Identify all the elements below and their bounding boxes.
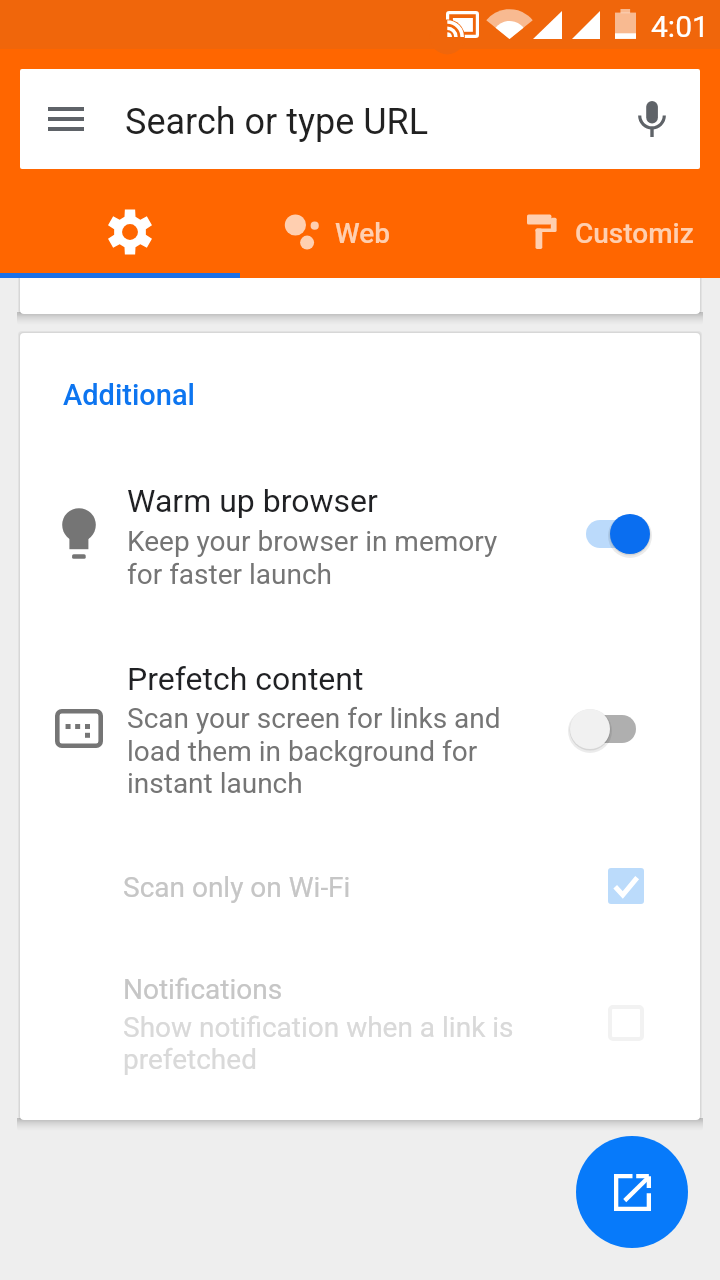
button[interactable] [480, 180, 720, 274]
staticText: Web [335, 217, 390, 250]
button[interactable]: Checked [598, 858, 654, 914]
button[interactable]: Unchecked [598, 995, 654, 1051]
staticText: Warm up browser [127, 482, 378, 520]
button[interactable]: Voice search [620, 87, 684, 151]
staticText: Notifications [123, 973, 283, 1006]
button[interactable]: Menu [20, 69, 700, 169]
staticText: Additional [63, 378, 195, 412]
staticText: Scan your screen for links and [127, 702, 501, 735]
button[interactable]: Menu [34, 87, 98, 151]
staticText: instant launch [127, 767, 303, 800]
button[interactable] [240, 180, 480, 274]
staticText: Show notification when a link is [123, 1011, 514, 1044]
staticText: Scan only on Wi-Fi [123, 871, 351, 904]
button[interactable] [20, 455, 700, 620]
staticText: Prefetch content [127, 660, 364, 698]
button[interactable]: Open in new window [576, 1136, 688, 1248]
staticText: Keep your browser in memory [127, 525, 498, 558]
button[interactable] [20, 965, 700, 1085]
button[interactable] [20, 855, 700, 925]
button[interactable]: Toggle on [570, 506, 652, 562]
staticText: for faster launch [127, 558, 333, 591]
staticText: 4:01 [651, 9, 709, 44]
button[interactable]: Settings tab [0, 180, 240, 274]
staticText: Customiz [575, 217, 694, 250]
button[interactable] [20, 635, 700, 810]
staticText: Search or type URL [125, 101, 429, 143]
staticText: load them in background for [127, 735, 478, 768]
staticText: prefetched [123, 1043, 257, 1076]
button[interactable]: Toggle off [570, 701, 652, 757]
